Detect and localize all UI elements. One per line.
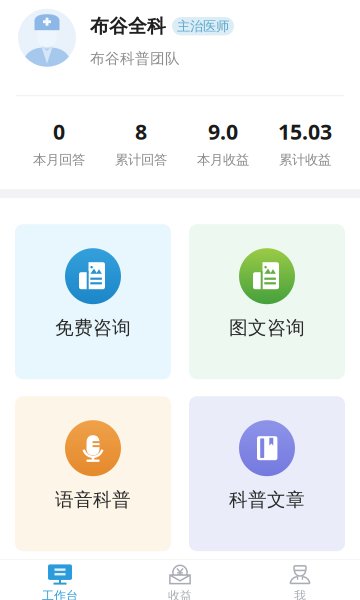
staticText: 布谷全科 [90,15,166,38]
button[interactable]: 语音科普 [15,396,171,551]
staticText: 主治医师 [177,18,229,34]
staticText: 科普文章 [229,488,305,511]
staticText: 9.0 [208,117,238,146]
button[interactable]: 图文咨询 [189,224,345,379]
staticText: 免费咨询 [55,316,131,339]
staticText: 布谷科普团队 [90,50,180,68]
staticText: 工作台 [42,588,78,600]
staticText: 8 [135,117,147,146]
staticText: 本月回答 [33,152,85,168]
staticText: 本月收益 [197,152,249,168]
button[interactable]: 我 [240,560,360,600]
button[interactable]: 科普文章 [189,396,345,551]
button[interactable]: 工作台 [0,560,120,600]
staticText: 累计回答 [115,152,167,168]
button[interactable]: 收益 [120,560,240,600]
staticText: 累计收益 [279,152,331,168]
staticText: 我 [294,588,306,600]
staticText: 语音科普 [55,488,131,511]
staticText: 收益 [168,588,192,600]
staticText: 0 [53,117,65,146]
staticText: 15.03 [278,117,332,146]
staticText: 图文咨询 [229,316,305,339]
button[interactable]: 免费咨询 [15,224,171,379]
